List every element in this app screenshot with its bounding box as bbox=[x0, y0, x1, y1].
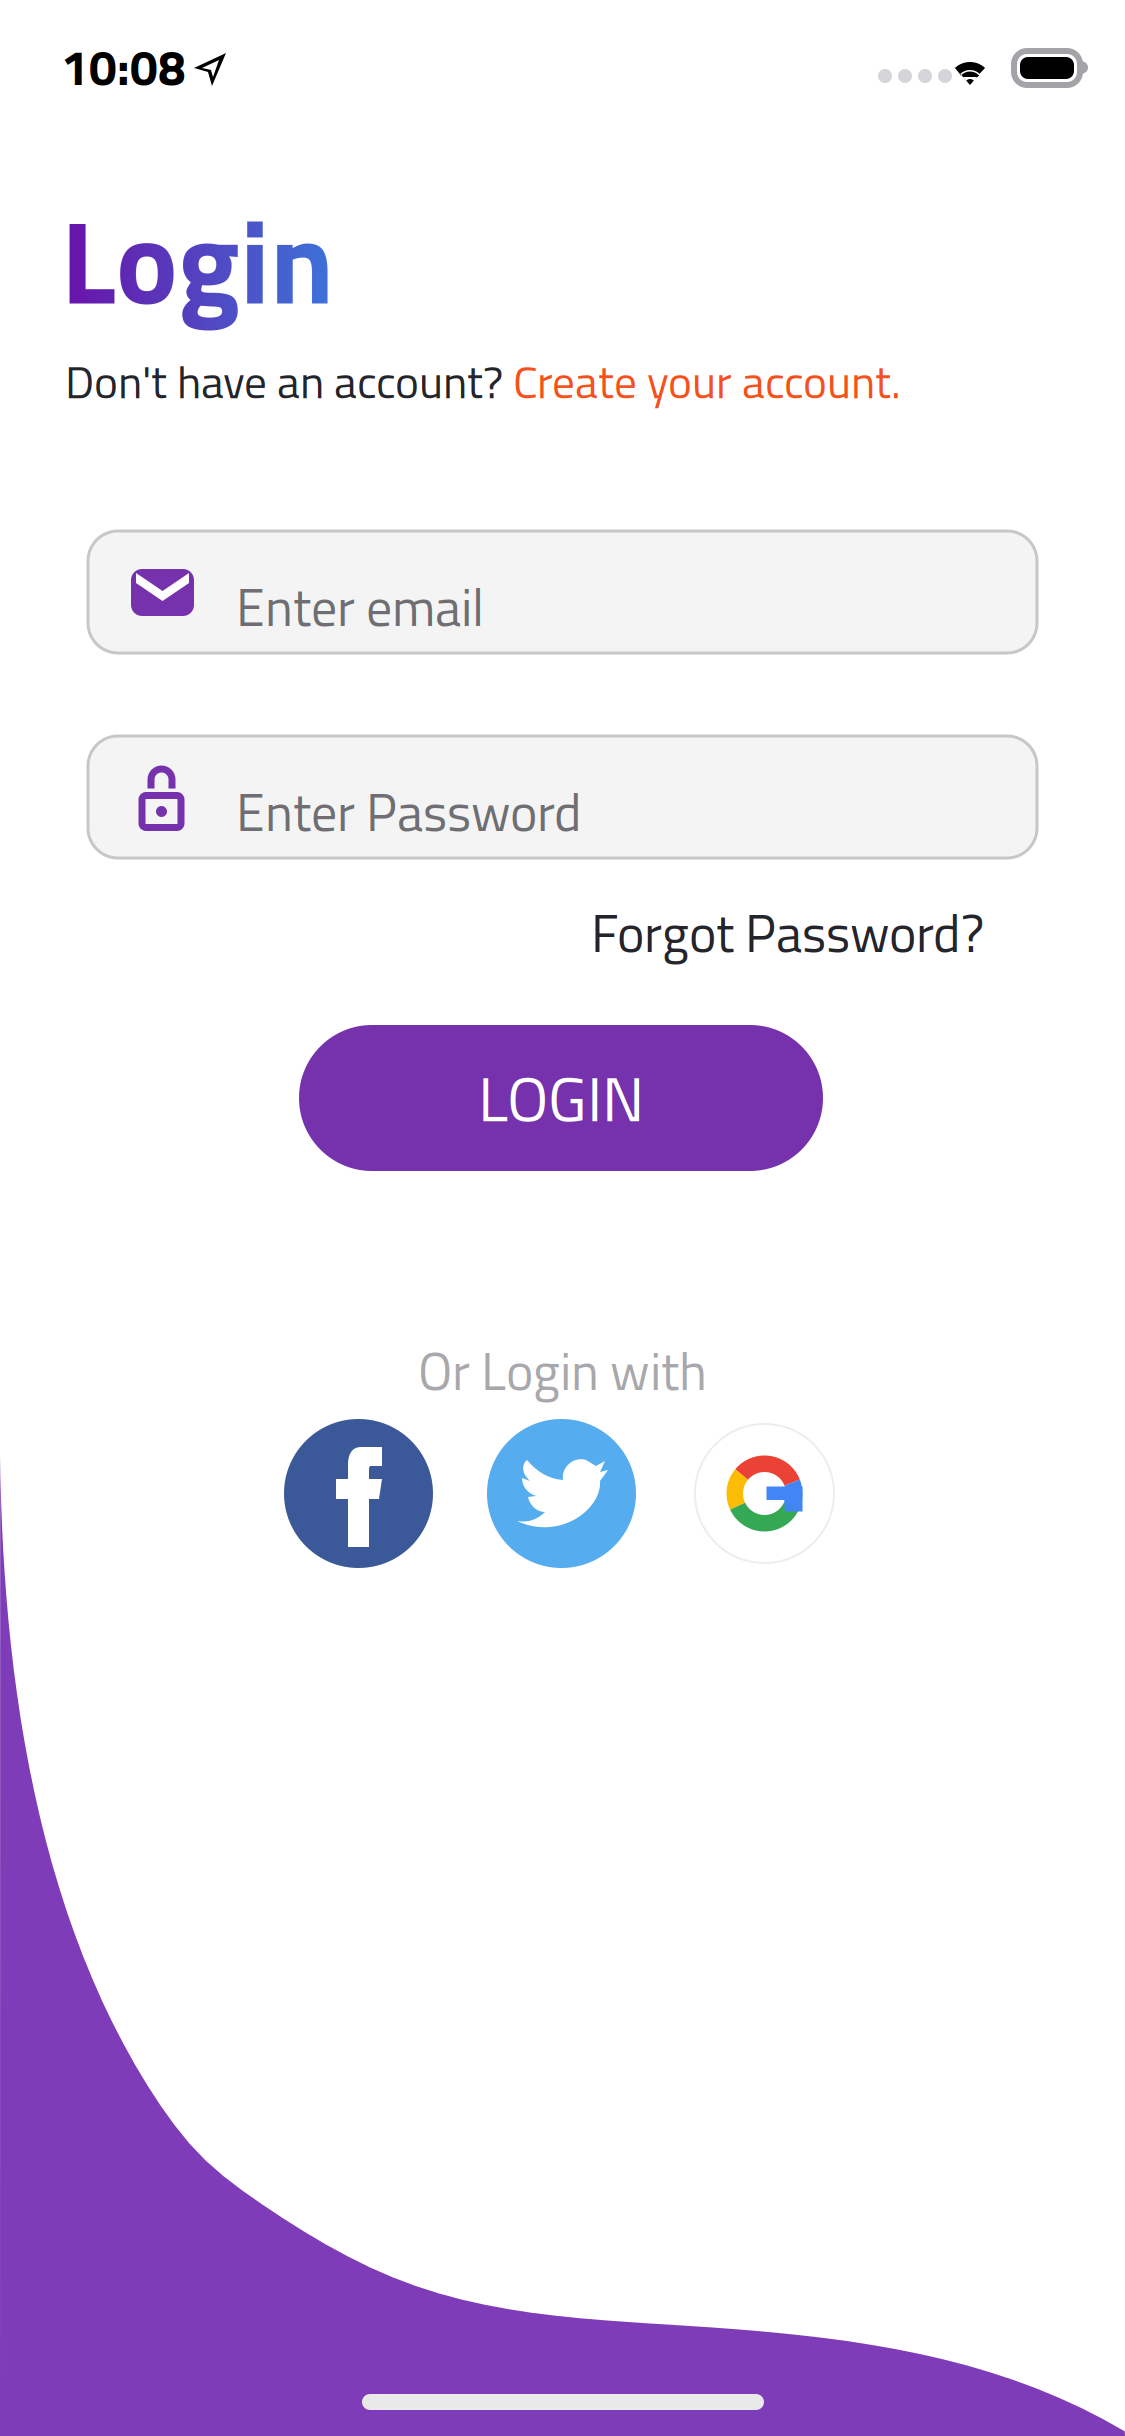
button[interactable]: Create your account. bbox=[513, 347, 901, 416]
staticText: Create your account. bbox=[513, 347, 901, 416]
button[interactable]: Sign in with Facebook bbox=[284, 1419, 433, 1568]
staticText: Enter Password bbox=[236, 772, 582, 851]
button[interactable]: Sign in with Google bbox=[690, 1419, 839, 1568]
staticText: Or Login with bbox=[418, 1331, 707, 1410]
button[interactable]: Forgot Password? bbox=[591, 893, 984, 972]
button[interactable]: Sign in with Twitter bbox=[487, 1419, 636, 1568]
button[interactable]: Enter Password bbox=[88, 736, 1037, 858]
staticText: Don't have an account? bbox=[65, 347, 513, 416]
button[interactable]: LOGIN bbox=[299, 1025, 823, 1171]
staticText: LOGIN bbox=[478, 1050, 644, 1146]
staticText: 10:08 bbox=[61, 29, 186, 104]
button[interactable]: Enter email bbox=[88, 531, 1037, 653]
staticText: Enter email bbox=[236, 567, 484, 646]
staticText: Forgot Password? bbox=[591, 893, 984, 972]
